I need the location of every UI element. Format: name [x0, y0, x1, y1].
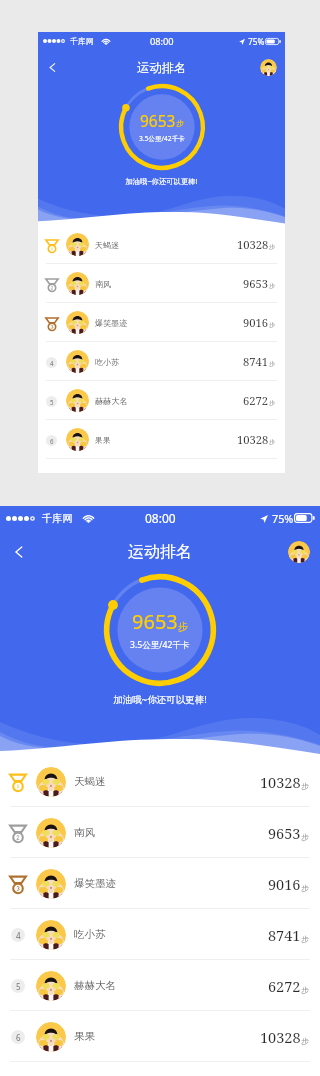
- staticText: 步: [269, 321, 276, 329]
- staticText: 步: [269, 243, 276, 251]
- button[interactable]: Profile: [288, 541, 310, 563]
- staticText: 果果: [74, 1030, 95, 1043]
- staticText: 加油哦~你还可以更棒!: [38, 176, 285, 186]
- staticText: 步: [301, 1036, 309, 1046]
- staticText: 步: [176, 119, 184, 129]
- staticText: 9016: [243, 315, 269, 330]
- staticText: 6272: [268, 976, 301, 996]
- staticText: 爆笑墨迹: [95, 318, 128, 328]
- button[interactable]: 4: [0, 909, 320, 960]
- staticText: 步: [301, 781, 309, 791]
- staticText: 10328: [260, 772, 301, 792]
- staticText: 3.5公里/42千卡: [130, 639, 190, 651]
- staticText: 加油哦~你还可以更棒!: [0, 693, 320, 706]
- staticText: 果果: [95, 435, 112, 445]
- button[interactable]: Profile: [260, 59, 277, 76]
- staticText: 步: [301, 934, 309, 944]
- staticText: 步: [269, 399, 276, 407]
- staticText: 爆笑墨迹: [74, 877, 116, 890]
- staticText: 10328: [260, 1027, 301, 1047]
- staticText: 4: [16, 930, 21, 941]
- staticText: 运动排名: [137, 60, 187, 76]
- staticText: 8741: [268, 925, 301, 945]
- button[interactable]: 天蝎迷: [38, 225, 285, 264]
- staticText: 75%: [248, 36, 265, 47]
- staticText: 08:00: [150, 35, 174, 48]
- button[interactable]: 南风: [0, 807, 320, 858]
- staticText: 6272: [243, 393, 269, 408]
- staticText: 南风: [74, 826, 95, 839]
- staticText: 步: [269, 360, 276, 368]
- staticText: 吃小苏: [95, 357, 120, 367]
- staticText: 08:00: [145, 510, 176, 526]
- staticText: 75%: [272, 511, 294, 526]
- staticText: 步: [301, 985, 309, 995]
- staticText: 千库网: [70, 36, 94, 46]
- staticText: 南风: [95, 279, 112, 289]
- staticText: 9653: [140, 110, 176, 131]
- staticText: 步: [178, 620, 188, 633]
- staticText: 6: [16, 1032, 21, 1043]
- staticText: 9016: [268, 874, 301, 894]
- staticText: 赫赫大名: [74, 979, 116, 992]
- staticText: 步: [269, 438, 276, 446]
- staticText: 吃小苏: [74, 928, 106, 941]
- staticText: 步: [269, 282, 276, 290]
- staticText: 6: [50, 437, 54, 445]
- button[interactable]: 天蝎迷: [0, 756, 320, 807]
- staticText: 赫赫大名: [95, 396, 128, 406]
- staticText: 天蝎迷: [95, 240, 120, 250]
- staticText: 5: [50, 398, 54, 406]
- button[interactable]: 爆笑墨迹: [38, 303, 285, 342]
- staticText: 8741: [243, 354, 269, 369]
- button[interactable]: Back: [4, 537, 34, 567]
- staticText: 10328: [237, 432, 269, 447]
- staticText: 9653: [132, 608, 178, 635]
- button[interactable]: 6: [38, 420, 285, 459]
- button[interactable]: 6: [0, 1011, 320, 1062]
- staticText: 运动排名: [128, 542, 192, 562]
- button[interactable]: 5: [38, 381, 285, 420]
- staticText: 千库网: [42, 512, 73, 525]
- button[interactable]: 5: [0, 960, 320, 1011]
- button[interactable]: 爆笑墨迹: [0, 858, 320, 909]
- button[interactable]: 南风: [38, 264, 285, 303]
- staticText: 5: [16, 981, 21, 992]
- staticText: 步: [301, 832, 309, 842]
- staticText: 步: [301, 883, 309, 893]
- staticText: 3.5公里/42千卡: [139, 134, 185, 143]
- button[interactable]: Back: [41, 56, 64, 79]
- staticText: 4: [50, 359, 54, 367]
- button[interactable]: 4: [38, 342, 285, 381]
- staticText: 9653: [243, 276, 269, 291]
- staticText: 天蝎迷: [74, 775, 106, 788]
- staticText: 10328: [237, 237, 269, 252]
- staticText: 9653: [268, 823, 301, 843]
